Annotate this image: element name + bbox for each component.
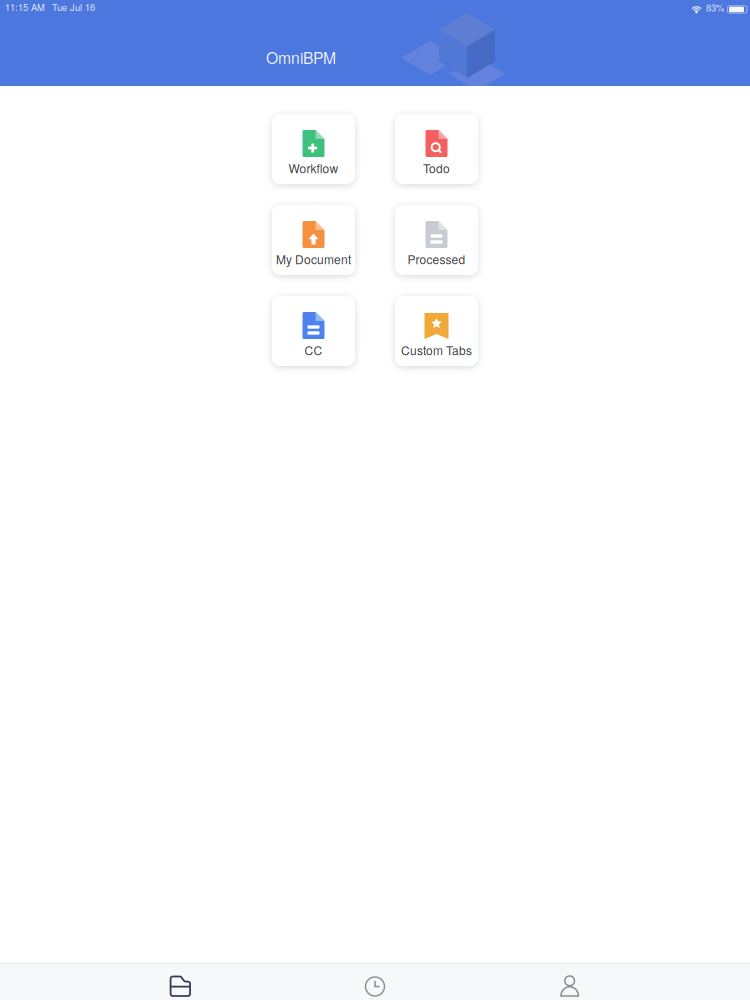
staticText: 83%	[706, 1, 724, 14]
staticText: OmniBPM	[266, 46, 336, 68]
button[interactable]: Custom Tabs	[395, 296, 478, 366]
staticText: 11:15 AM	[5, 0, 45, 14]
staticText: Processed	[407, 250, 465, 268]
staticText: My Document	[276, 250, 351, 268]
button[interactable]: Files	[83, 964, 278, 1000]
staticText: CC	[304, 341, 322, 359]
button[interactable]: CC	[272, 296, 355, 366]
button[interactable]: Recents	[278, 964, 472, 1000]
button[interactable]: My Document	[272, 205, 355, 275]
button[interactable]: Profile	[472, 964, 667, 1000]
staticText: Tue Jul 16	[52, 0, 95, 14]
staticText: Workflow	[288, 159, 338, 177]
staticText: Custom Tabs	[401, 341, 472, 359]
staticText: Todo	[423, 159, 450, 177]
button[interactable]: Workflow	[272, 114, 355, 184]
button[interactable]: Processed	[395, 205, 478, 275]
button[interactable]: Todo	[395, 114, 478, 184]
